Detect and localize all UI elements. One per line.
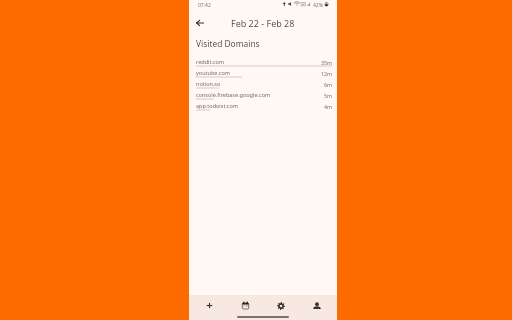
button[interactable]: notion.so: [196, 79, 332, 90]
button[interactable]: Profile: [301, 295, 333, 316]
button[interactable]: Add: [193, 295, 225, 316]
staticText: console.firebase.google.com: [196, 91, 271, 98]
staticText: 4m: [324, 103, 332, 110]
button[interactable]: Settings: [265, 295, 297, 316]
staticText: 07:42: [198, 2, 211, 9]
staticText: Feb 22 - Feb 28: [231, 17, 295, 29]
staticText: 35m: [321, 59, 332, 66]
button[interactable]: Calendar: [229, 295, 261, 316]
staticText: youtube.com: [196, 69, 230, 76]
staticText: Visited Domains: [196, 38, 260, 49]
button[interactable]: youtube.com: [196, 68, 332, 79]
button[interactable]: app.todoist.com: [196, 101, 332, 112]
staticText: 12m: [321, 70, 332, 77]
staticText: app.todoist.com: [196, 102, 238, 109]
button[interactable]: Back: [192, 15, 208, 31]
staticText: reddit.com: [196, 58, 225, 65]
staticText: 5m: [324, 92, 332, 99]
staticText: 42%: [313, 2, 323, 9]
button[interactable]: console.firebase.google.com: [196, 90, 332, 101]
button[interactable]: reddit.com: [196, 57, 332, 68]
staticText: notion.so: [196, 80, 221, 87]
staticText: 6m: [324, 81, 332, 88]
